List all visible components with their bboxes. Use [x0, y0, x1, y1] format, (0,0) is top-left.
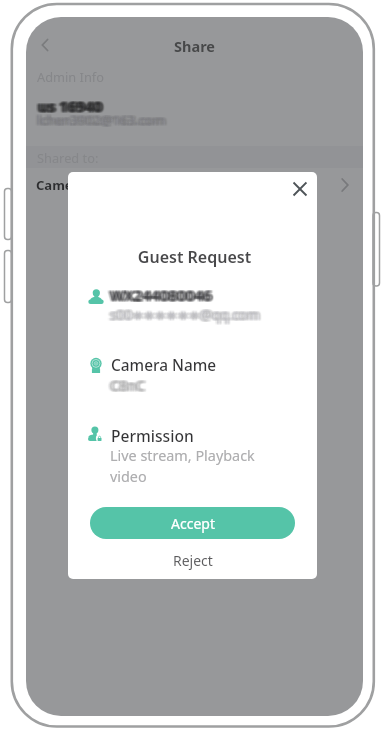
staticText: Reject [173, 551, 213, 570]
staticText: C8nC [110, 375, 145, 394]
staticText: us 16940 [37, 95, 102, 115]
staticText: WX244080046 [108, 284, 210, 305]
staticText: s00∗∗∗∗∗∗@qq.com [108, 305, 258, 323]
staticText: lchen3902@163.com [35, 110, 164, 128]
staticText: s00∗∗∗∗∗∗@qq.com [109, 307, 259, 325]
staticText: s00∗∗∗∗∗∗@qq.com [107, 306, 257, 324]
staticText: WX244080046 [109, 286, 211, 307]
staticText: s00∗∗∗∗∗∗@qq.com [112, 307, 262, 325]
staticText: lchen3902@163.com [34, 110, 163, 128]
staticText: us 16940 [36, 97, 101, 117]
staticText: C8nC [109, 376, 144, 395]
staticText: WX244080046 [109, 286, 211, 307]
staticText: s00∗∗∗∗∗∗@qq.com [111, 307, 261, 325]
staticText: C8nC [107, 377, 142, 396]
staticText: C8nC [109, 375, 144, 394]
staticText: WX244080046 [111, 285, 213, 306]
staticText: s00∗∗∗∗∗∗@qq.com [110, 307, 260, 325]
staticText: C8nC [113, 376, 148, 395]
staticText: C8nC [111, 377, 146, 396]
staticText: us 16940 [36, 96, 101, 116]
button[interactable]: Accept [90, 507, 295, 539]
staticText: Share [26, 36, 363, 56]
staticText: us 16940 [35, 97, 100, 117]
staticText: us 16940 [39, 97, 104, 117]
staticText: lchen3902@163.com [36, 112, 165, 130]
staticText: WX244080046 [107, 286, 209, 307]
staticText: s00∗∗∗∗∗∗@qq.com [109, 306, 259, 324]
staticText: s00∗∗∗∗∗∗@qq.com [112, 305, 262, 323]
staticText: lchen3902@163.com [37, 111, 166, 129]
staticText: us 16940 [39, 95, 104, 115]
staticText: s00∗∗∗∗∗∗@qq.com [113, 306, 263, 324]
staticText: WX244080046 [107, 285, 209, 306]
staticText: us 16940 [40, 96, 105, 116]
staticText: s00∗∗∗∗∗∗@qq.com [111, 306, 261, 324]
staticText: C8nC [111, 376, 146, 395]
staticText: C8nC [110, 376, 145, 395]
staticText: s00∗∗∗∗∗∗@qq.com [112, 306, 262, 324]
staticText: C8nC [113, 375, 148, 394]
staticText: WX244080046 [109, 284, 211, 305]
staticText: us 16940 [37, 97, 102, 117]
staticText: WX244080046 [112, 286, 214, 307]
staticText: C8nC [109, 377, 144, 396]
staticText: us 16940 [37, 97, 102, 117]
staticText: lchen3902@163.com [39, 111, 168, 129]
staticText: C8nC [107, 376, 142, 395]
staticText: s00∗∗∗∗∗∗@qq.com [109, 307, 259, 325]
staticText: C8nC [112, 376, 147, 395]
staticText: lchen3902@163.com [37, 110, 166, 128]
staticText: WX244080046 [112, 285, 214, 306]
staticText: lchen3902@163.com [39, 112, 168, 130]
staticText: us 16940 [36, 95, 101, 115]
staticText: Permission [111, 425, 194, 446]
button[interactable]: Reject [68, 545, 317, 575]
staticText: WX244080046 [107, 284, 209, 305]
staticText: s00∗∗∗∗∗∗@qq.com [113, 307, 263, 325]
staticText: s00∗∗∗∗∗∗@qq.com [113, 305, 263, 323]
staticText: C8nC [109, 376, 144, 395]
staticText: lchen3902@163.com [36, 110, 165, 128]
staticText: us 16940 [38, 97, 103, 117]
staticText: WX244080046 [113, 285, 215, 306]
staticText: WX244080046 [108, 286, 210, 307]
staticText: lchen3902@163.com [34, 111, 163, 129]
staticText: lchen3902@163.com [38, 112, 167, 130]
staticText: s00∗∗∗∗∗∗@qq.com [108, 307, 258, 325]
staticText: WX244080046 [113, 286, 215, 307]
staticText: WX244080046 [110, 286, 212, 307]
staticText: C8nC [109, 375, 144, 394]
staticText: lchen3902@163.com [39, 111, 168, 129]
staticText: lchen3902@163.com [40, 111, 169, 129]
staticText: us 16940 [37, 96, 102, 116]
staticText: C8nC [110, 377, 145, 396]
staticText: C8nC [112, 376, 147, 395]
staticText: lchen3902@163.com [36, 110, 165, 128]
staticText: lchen3902@163.com [40, 112, 169, 130]
staticText: Camera Name [111, 355, 217, 376]
staticText: Shared to: [37, 149, 99, 166]
staticText: lchen3902@163.com [34, 112, 163, 130]
staticText: lchen3902@163.com [36, 111, 165, 129]
staticText: Admin Info [37, 68, 104, 85]
button[interactable]: Close [287, 176, 313, 202]
staticText: WX244080046 [109, 284, 211, 305]
staticText: s00∗∗∗∗∗∗@qq.com [110, 305, 260, 323]
staticText: WX244080046 [112, 286, 214, 307]
staticText: WX244080046 [111, 284, 213, 305]
staticText: WX244080046 [108, 285, 210, 306]
staticText: us 16940 [40, 95, 105, 115]
staticText: us 16940 [41, 95, 106, 115]
staticText: WX244080046 [112, 284, 214, 305]
staticText: us 16940 [40, 96, 105, 116]
staticText: us 16940 [35, 96, 100, 116]
staticText: lchen3902@163.com [35, 111, 164, 129]
button[interactable]: Camera Name [26, 166, 363, 204]
staticText: lchen3902@163.com [39, 112, 168, 130]
staticText: us 16940 [40, 97, 105, 117]
staticText: s00∗∗∗∗∗∗@qq.com [112, 307, 262, 325]
staticText: us 16940 [37, 96, 102, 116]
staticText: s00∗∗∗∗∗∗@qq.com [107, 307, 257, 325]
button[interactable]: Back [32, 32, 58, 58]
